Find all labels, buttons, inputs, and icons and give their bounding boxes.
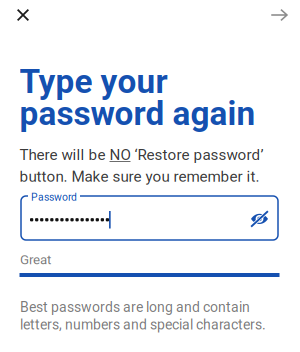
staticText: Password	[31, 191, 77, 203]
button[interactable]: Close	[1, 0, 45, 32]
staticText: Great	[20, 252, 51, 268]
button[interactable]: Continue	[257, 0, 300, 32]
button[interactable]: Show password	[244, 205, 274, 233]
staticText: There will be NO ‘Restore password’ butt…	[19, 146, 263, 185]
staticText: Type your password again	[19, 62, 255, 133]
staticText: Best passwords are long and contain lett…	[20, 299, 266, 333]
